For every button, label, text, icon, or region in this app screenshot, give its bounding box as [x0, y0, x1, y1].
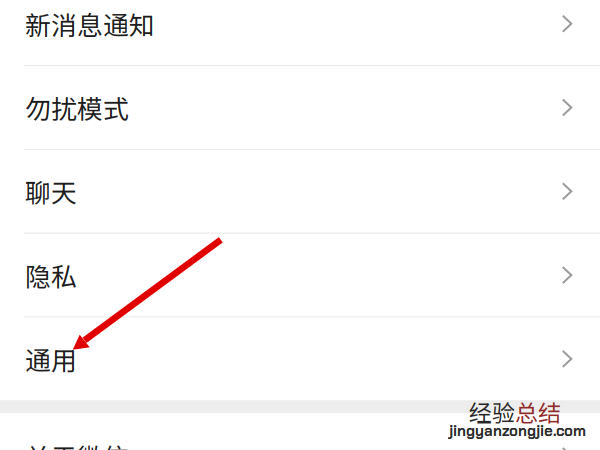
staticText: 聊天 — [25, 173, 77, 210]
staticText: 隐私 — [25, 256, 77, 294]
staticText: 勿扰模式 — [25, 89, 129, 126]
staticText: 总结 — [515, 395, 561, 428]
button[interactable]: 勿扰模式 — [0, 66, 600, 149]
button[interactable]: 关于微信 — [0, 413, 600, 445]
staticText: jingyanzongjie.com — [449, 421, 586, 441]
button[interactable]: 隐私 — [0, 234, 600, 316]
staticText: 通用 — [25, 340, 77, 378]
button[interactable]: 聊天 — [0, 150, 600, 233]
staticText: 关于微信 — [25, 437, 129, 450]
button[interactable]: 新消息通知 — [0, 0, 600, 65]
staticText: 新消息通知 — [25, 5, 155, 42]
button[interactable]: 通用 — [0, 318, 600, 400]
staticText: 经验 — [469, 395, 515, 428]
